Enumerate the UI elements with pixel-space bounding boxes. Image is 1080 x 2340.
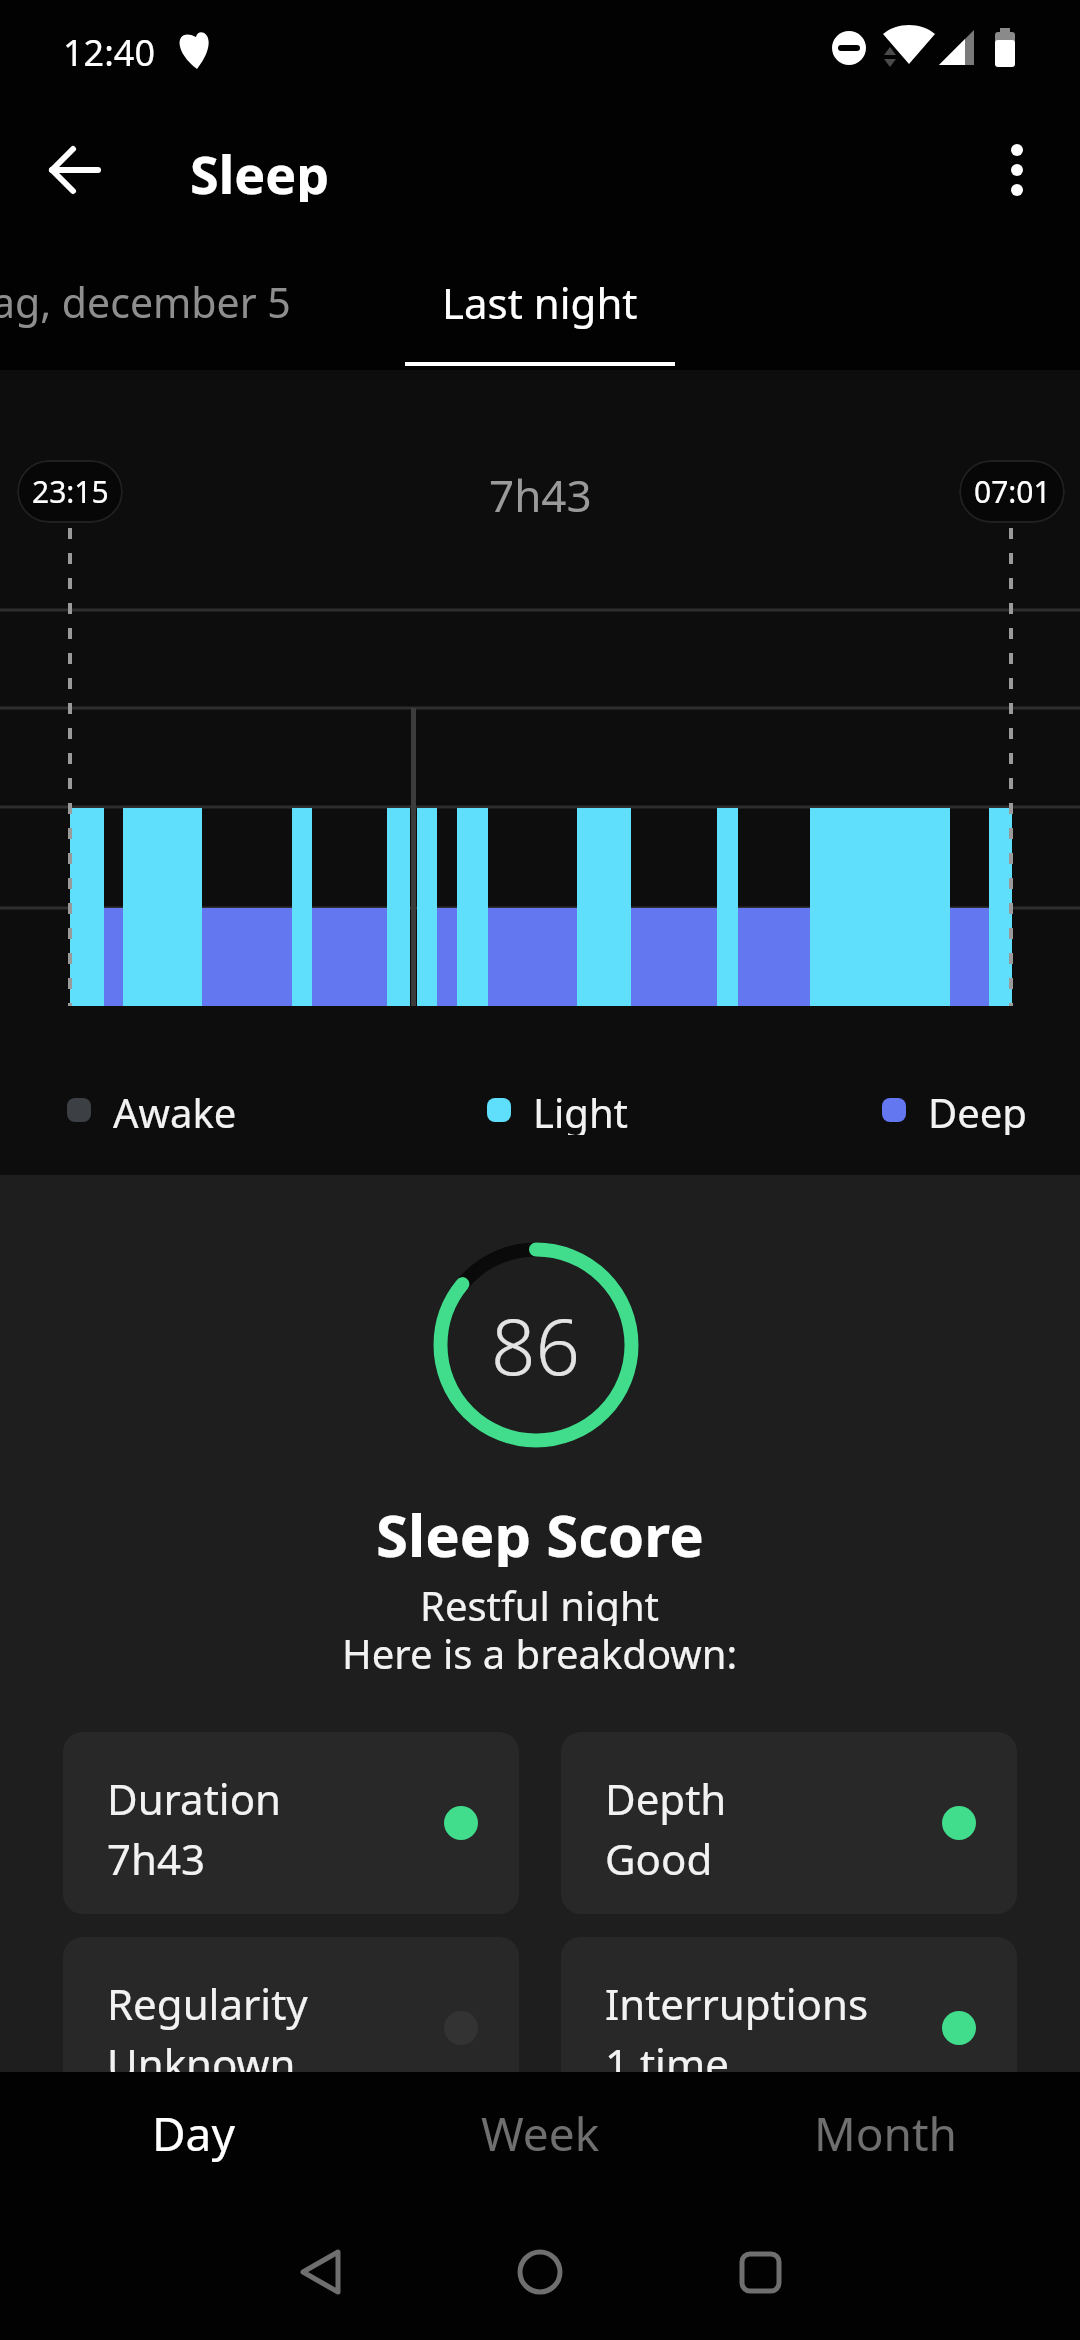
staticText: Light bbox=[533, 1085, 629, 1135]
staticText: 7h43 bbox=[489, 465, 592, 520]
staticText: 12:40 bbox=[63, 28, 156, 68]
staticText: 86 bbox=[491, 1292, 581, 1398]
staticText: 7h43 bbox=[107, 1830, 206, 1887]
staticText: Sleep Score bbox=[376, 1495, 704, 1567]
button[interactable]: Week bbox=[380, 2102, 700, 2162]
staticText: Last night bbox=[442, 274, 638, 331]
staticText: Week bbox=[481, 2102, 600, 2162]
staticText: Good bbox=[605, 1830, 713, 1887]
staticText: 23:15 bbox=[32, 471, 109, 512]
button[interactable] bbox=[985, 135, 1049, 199]
button[interactable]: Day bbox=[33, 2102, 353, 2162]
button[interactable]: Interruptions bbox=[561, 1937, 1017, 2119]
staticText: Depth bbox=[605, 1770, 727, 1827]
button[interactable]: Month bbox=[726, 2102, 1046, 2162]
button[interactable]: Last night bbox=[442, 274, 638, 331]
button[interactable]: ag, december 5 bbox=[0, 272, 291, 332]
staticText: Unknown bbox=[107, 2035, 296, 2092]
button[interactable]: Regularity bbox=[63, 1937, 519, 2119]
staticText: Deep bbox=[928, 1085, 1027, 1135]
button[interactable]: Depth bbox=[561, 1732, 1017, 1914]
staticText: Regularity bbox=[107, 1975, 308, 2032]
button[interactable]: Duration bbox=[63, 1732, 519, 1914]
button[interactable] bbox=[40, 135, 110, 205]
staticText: Restful night bbox=[420, 1578, 660, 1626]
staticText: Awake bbox=[113, 1085, 237, 1135]
staticText: ag, december 5 bbox=[0, 274, 291, 330]
staticText: Sleep bbox=[190, 138, 330, 202]
staticText: Duration bbox=[107, 1770, 282, 1827]
staticText: Here is a breakdown: bbox=[342, 1626, 738, 1674]
staticText: Day bbox=[152, 2102, 235, 2162]
staticText: Interruptions bbox=[605, 1975, 869, 2032]
staticText: Month bbox=[814, 2102, 958, 2162]
staticText: 1 time bbox=[605, 2035, 729, 2092]
staticText: 07:01 bbox=[974, 471, 1051, 512]
